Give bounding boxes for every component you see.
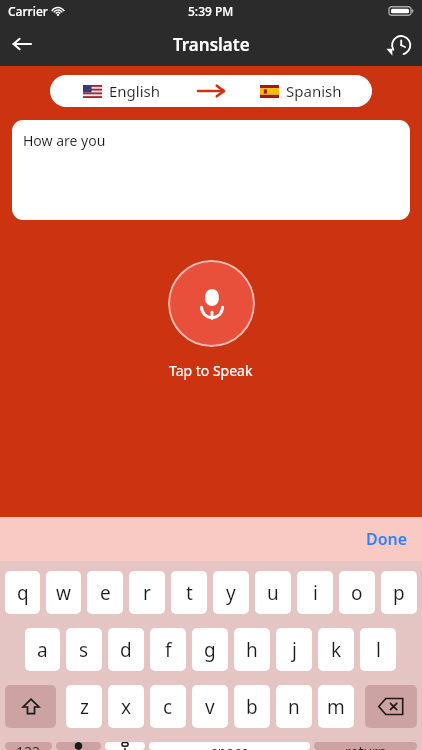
staticText: 5:39 PM xyxy=(188,3,234,19)
button[interactable]: j xyxy=(276,628,312,671)
button[interactable]: p xyxy=(381,571,417,614)
staticText: space xyxy=(211,742,249,750)
button[interactable]: English xyxy=(50,75,372,107)
staticText: j xyxy=(292,637,297,663)
staticText: z xyxy=(80,694,89,720)
staticText: How are you xyxy=(23,131,106,150)
staticText: m xyxy=(327,694,345,720)
staticText: w xyxy=(56,580,71,606)
button[interactable]: o xyxy=(339,571,375,614)
staticText: x xyxy=(121,694,132,720)
button[interactable]: b xyxy=(234,685,270,728)
button[interactable]: Tap to Speak xyxy=(168,260,255,347)
button[interactable]: a xyxy=(25,628,60,671)
button[interactable]: k xyxy=(318,628,354,671)
staticText: i xyxy=(313,580,318,606)
button[interactable]: Back xyxy=(0,22,44,66)
button[interactable]: i xyxy=(297,571,333,614)
button[interactable]: y xyxy=(213,571,249,614)
staticText: n xyxy=(288,694,300,720)
staticText: return xyxy=(345,742,387,750)
button[interactable]: q xyxy=(5,571,40,614)
staticText: b xyxy=(246,694,258,720)
button[interactable]: c xyxy=(150,685,186,728)
button[interactable]: 123 xyxy=(5,742,52,750)
staticText: s xyxy=(79,637,89,663)
button[interactable]: Backspace xyxy=(365,685,417,728)
staticText: k xyxy=(331,637,342,663)
button[interactable]: g xyxy=(192,628,228,671)
staticText: a xyxy=(37,637,48,663)
button[interactable]: History xyxy=(378,22,422,66)
staticText: c xyxy=(163,694,173,720)
staticText: Done xyxy=(366,528,408,550)
staticText: g xyxy=(204,637,216,663)
button[interactable]: w xyxy=(46,571,81,614)
staticText: 123 xyxy=(16,742,41,750)
button[interactable]: x xyxy=(108,685,144,728)
button[interactable]: h xyxy=(234,628,270,671)
staticText: t xyxy=(186,580,193,606)
button[interactable]: t xyxy=(171,571,207,614)
button[interactable]: return xyxy=(314,742,417,750)
staticText: Translate xyxy=(173,33,250,56)
button[interactable]: v xyxy=(192,685,228,728)
button[interactable]: r xyxy=(129,571,165,614)
staticText: v xyxy=(205,694,215,720)
button[interactable]: space xyxy=(149,742,310,750)
staticText: f xyxy=(165,637,172,663)
button[interactable]: f xyxy=(150,628,186,671)
staticText: Spanish xyxy=(286,81,342,101)
button[interactable]: l xyxy=(360,628,396,671)
button[interactable]: Done xyxy=(352,520,422,558)
button[interactable]: n xyxy=(276,685,312,728)
staticText: o xyxy=(351,580,363,606)
button[interactable]: Dictate xyxy=(105,742,145,750)
staticText: Tap to Speak xyxy=(169,361,253,380)
button[interactable]: e xyxy=(87,571,123,614)
button[interactable]: How are you xyxy=(12,120,410,220)
button[interactable]: s xyxy=(66,628,102,671)
button[interactable]: Switch keyboard xyxy=(56,742,101,750)
staticText: u xyxy=(267,580,279,606)
button[interactable]: m xyxy=(318,685,354,728)
staticText: h xyxy=(246,637,258,663)
button[interactable]: u xyxy=(255,571,291,614)
staticText: Carrier xyxy=(8,3,48,19)
staticText: English xyxy=(109,81,161,101)
button[interactable]: z xyxy=(66,685,102,728)
button[interactable]: d xyxy=(108,628,144,671)
staticText: p xyxy=(393,580,405,606)
staticText: r xyxy=(143,580,151,606)
staticText: d xyxy=(120,637,132,663)
button[interactable]: Shift xyxy=(5,685,56,728)
staticText: e xyxy=(100,580,111,606)
staticText: l xyxy=(376,637,381,663)
staticText: q xyxy=(17,580,29,606)
staticText: y xyxy=(226,580,236,606)
